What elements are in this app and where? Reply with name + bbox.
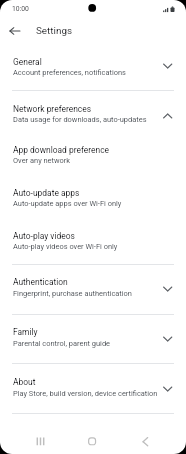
button[interactable]: App download preference [0,133,186,176]
button[interactable]: Back [5,21,25,41]
staticText: Network preferences [13,104,92,114]
staticText: Play Store, build version, device certif… [13,389,158,398]
staticText: Auto-update apps over Wi-Fi only [13,199,122,208]
button[interactable]: Family [0,314,186,363]
button[interactable]: Auto-play videos [0,219,186,264]
button[interactable]: Authentication [0,264,186,314]
staticText: Auto-play videos over Wi-Fi only [13,242,118,251]
button[interactable]: Recent apps [29,430,52,453]
button[interactable]: Auto-update apps [0,176,186,219]
staticText: General [13,57,42,67]
button[interactable]: About [0,363,186,413]
staticText: Auto-play videos [13,231,75,241]
staticText: Fingerprint, purchase authentication [13,289,132,298]
staticText: Data usage for downloads, auto-updates [13,115,147,124]
staticText: Auto-update apps [13,188,80,198]
staticText: Settings [36,25,73,37]
staticText: Account preferences, notifications [13,68,126,77]
button[interactable]: Back [133,430,156,453]
button[interactable]: Network preferences [0,90,186,133]
staticText: Over any network [13,156,71,165]
staticText: Parental control, parent guide [13,339,111,348]
staticText: Family [13,327,38,337]
button[interactable]: General [0,42,186,90]
button[interactable]: Home [81,430,104,453]
staticText: Authentication [13,277,68,287]
staticText: App download preference [13,145,110,155]
staticText: 10:00 [12,5,29,13]
staticText: About [13,377,36,387]
